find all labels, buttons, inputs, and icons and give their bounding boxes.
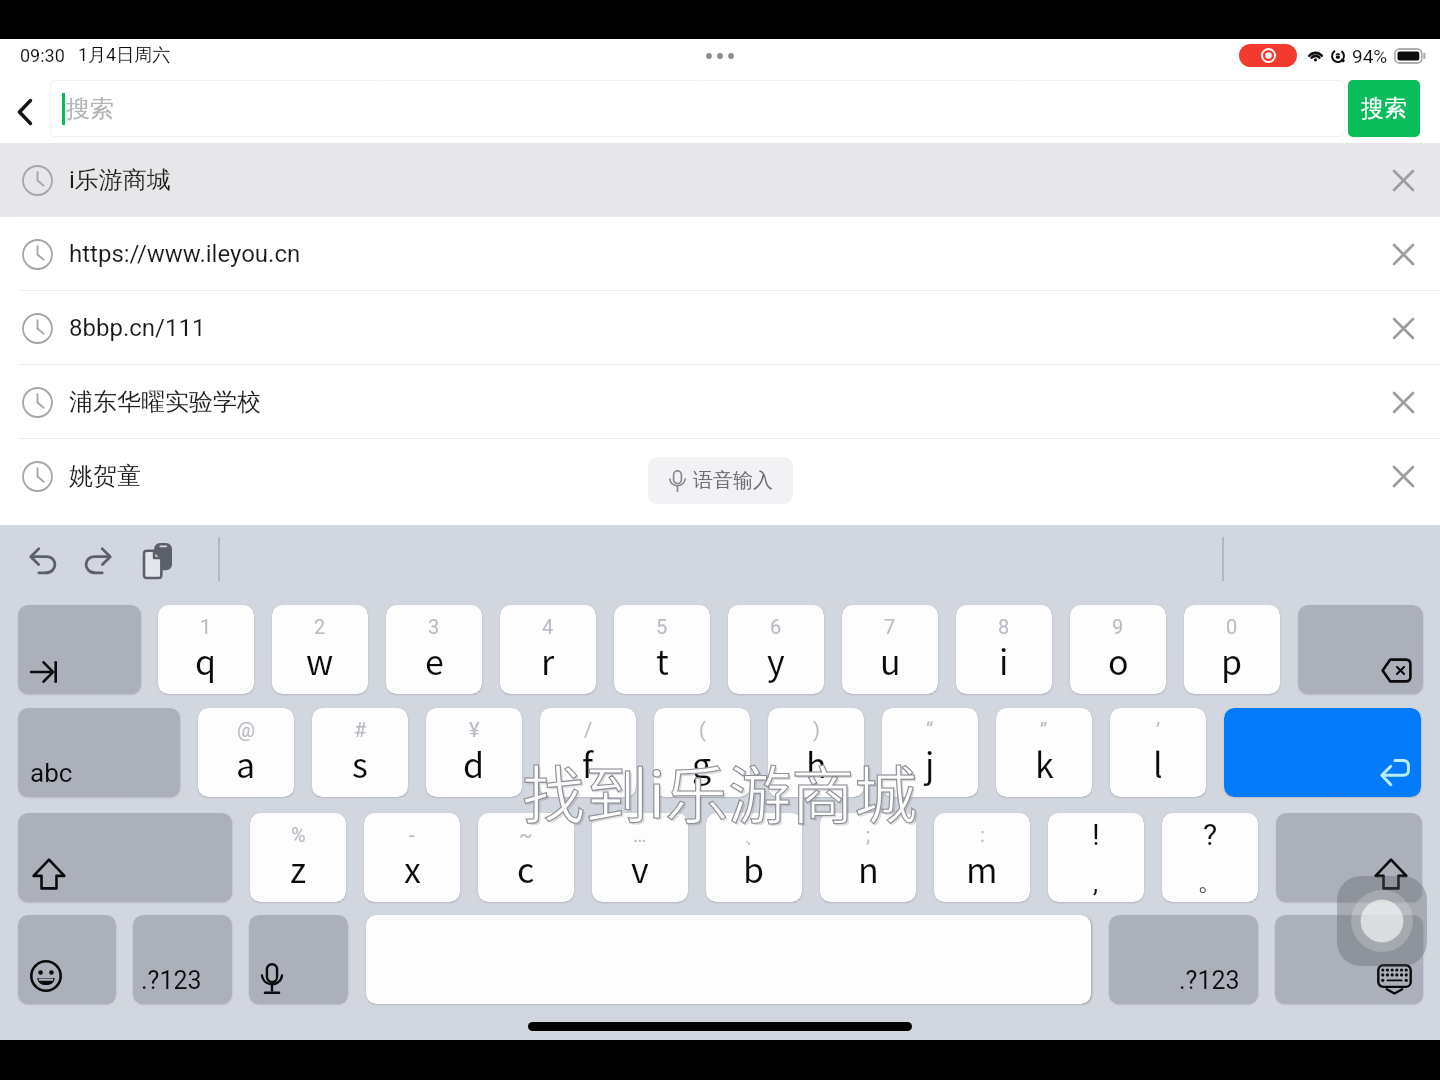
staticText: 。 [1197,865,1223,898]
button[interactable]: ’ [1110,708,1206,797]
button[interactable]: # [312,708,408,797]
button[interactable]: Backspace [1298,605,1423,694]
staticText: - [409,823,415,846]
button[interactable]: 4 [500,605,596,694]
button[interactable]: % [250,813,346,902]
staticText: 姚贺童 [69,461,141,491]
button[interactable]: 搜索 [50,80,1345,137]
button[interactable]: Delete [1366,439,1440,513]
button[interactable]: 8 [956,605,1052,694]
button[interactable]: 6 [728,605,824,694]
button[interactable]: Delete [1366,143,1440,217]
staticText: 94% [1352,45,1388,67]
staticText: c [517,844,535,893]
staticText: 找到i乐游商城 [524,747,920,838]
button[interactable]: ~ [478,813,574,902]
staticText: u [880,636,901,685]
button[interactable]: 1 [158,605,254,694]
button[interactable]: ; [820,813,916,902]
button[interactable]: ! [1048,813,1144,902]
staticText: @ [237,718,255,741]
staticText: # [354,718,367,741]
button[interactable]: 7 [842,605,938,694]
staticText: l [1153,739,1163,788]
button[interactable]: 9 [1070,605,1166,694]
button[interactable]: 8bbp.cn/111 [0,291,1440,365]
button[interactable]: 3 [386,605,482,694]
staticText: h [806,739,827,788]
staticText: e [425,636,444,685]
button[interactable]: : [934,813,1030,902]
button[interactable]: 搜索 [1348,80,1420,137]
staticText: ~ [519,823,533,846]
staticText: .?123 [141,966,202,995]
button[interactable]: Voice [249,915,348,1004]
staticText: .?123 [1179,966,1240,995]
button[interactable]: Assistive touch [1337,876,1427,966]
staticText: 1月4日周六 [78,44,171,67]
staticText: d [463,739,485,788]
staticText: t [656,636,669,685]
button[interactable]: ¥ [426,708,522,797]
button[interactable]: “ [882,708,978,797]
staticText: 3 [428,615,440,638]
button[interactable]: 0 [1184,605,1280,694]
button[interactable]: 2 [272,605,368,694]
button[interactable]: @ [198,708,294,797]
staticText: 4 [542,615,554,638]
staticText: 9 [1112,615,1124,638]
staticText: 8 [998,615,1010,638]
button[interactable]: 语音输入 [648,457,793,504]
staticText: , [1093,868,1099,898]
button[interactable]: ( [654,708,750,797]
staticText: z [290,844,307,893]
staticText: 搜索 [66,94,114,124]
button[interactable]: Delete [1366,291,1440,365]
button[interactable]: Tab [18,605,141,694]
button[interactable]: / [540,708,636,797]
staticText: ? [1203,817,1218,852]
button[interactable]: Delete [1366,217,1440,291]
button[interactable]: ” [996,708,1092,797]
button[interactable]: ? [1162,813,1258,902]
button[interactable]: Clipboard [127,534,179,586]
button[interactable]: i乐游商城 [0,143,1440,217]
staticText: ( [699,718,706,741]
button[interactable]: Redo [71,534,123,586]
staticText: “ [926,718,934,741]
staticText: : [980,823,985,846]
staticText: k [1035,739,1054,788]
staticText: g [692,739,712,788]
button[interactable]: Shift right [1276,813,1422,902]
staticText: 0 [1226,615,1238,638]
button[interactable]: 5 [614,605,710,694]
button[interactable]: Emoji [18,915,116,1004]
button[interactable]: - [364,813,460,902]
button[interactable]: Enter [1224,708,1421,797]
button[interactable]: Back [0,80,50,143]
staticText: ” [1040,718,1048,741]
staticText: j [925,739,935,788]
button[interactable]: Undo [17,534,69,586]
button[interactable]: Shift [18,813,232,902]
staticText: ’ [1156,718,1161,741]
button[interactable]: Symbols [133,915,232,1004]
staticText: s [352,739,368,788]
staticText: i乐游商城 [69,165,171,195]
button[interactable]: 浦东华曜实验学校 [0,365,1440,439]
staticText: 2 [314,615,326,638]
button[interactable]: … [592,813,688,902]
staticText: 语音输入 [693,468,773,493]
button[interactable]: ) [768,708,864,797]
button[interactable]: 姚贺童 [0,439,1440,513]
staticText: ! [1092,817,1100,852]
button[interactable]: abc [18,708,180,797]
staticText: 找到i乐游商城 [522,745,918,836]
staticText: abc [30,758,73,788]
button[interactable]: https://www.ileyou.cn [0,217,1440,291]
button[interactable]: Delete [1366,365,1440,439]
button[interactable]: Hide keyboard [1275,915,1423,1004]
button[interactable]: 、 [706,813,802,902]
button[interactable]: Symbols2 [1109,915,1258,1004]
